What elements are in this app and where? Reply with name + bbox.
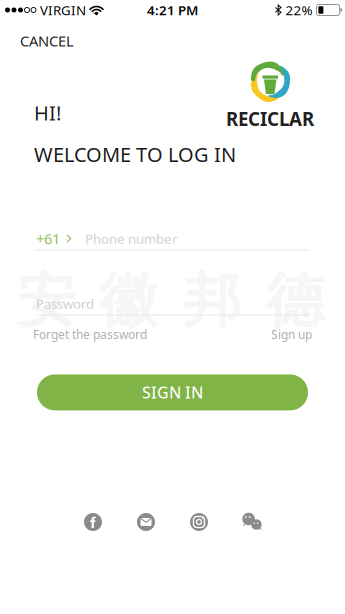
- button[interactable]: Forget the password: [33, 323, 147, 345]
- button[interactable]: Sign in with Instagram: [186, 509, 212, 535]
- staticText: HI!: [34, 99, 61, 126]
- staticText: 4:21 PM: [147, 1, 198, 19]
- staticText: 22%: [286, 1, 313, 19]
- staticText: +61: [36, 229, 60, 248]
- staticText: WELCOME TO LOG IN: [34, 141, 236, 168]
- staticText: RECICLAR: [226, 106, 314, 131]
- button[interactable]: Sign up: [271, 323, 312, 345]
- button[interactable]: SIGN IN: [37, 374, 308, 410]
- staticText: CANCEL: [20, 31, 74, 50]
- staticText: Sign up: [271, 326, 312, 342]
- staticText: 邦: [182, 265, 241, 337]
- staticText: 徽: [99, 265, 158, 337]
- button[interactable]: Sign in with WeChat: [239, 509, 265, 535]
- button[interactable]: CANCEL: [0, 24, 94, 57]
- staticText: Phone number: [85, 230, 178, 247]
- staticText: VIRGIN: [40, 1, 86, 19]
- staticText: Forget the password: [33, 326, 147, 342]
- staticText: 安: [16, 265, 75, 337]
- staticText: SIGN IN: [142, 382, 203, 403]
- staticText: Password: [36, 295, 94, 312]
- button[interactable]: Sign in with Email: [133, 509, 159, 535]
- staticText: 德: [265, 265, 324, 337]
- button[interactable]: Sign in with Facebook: [80, 509, 106, 535]
